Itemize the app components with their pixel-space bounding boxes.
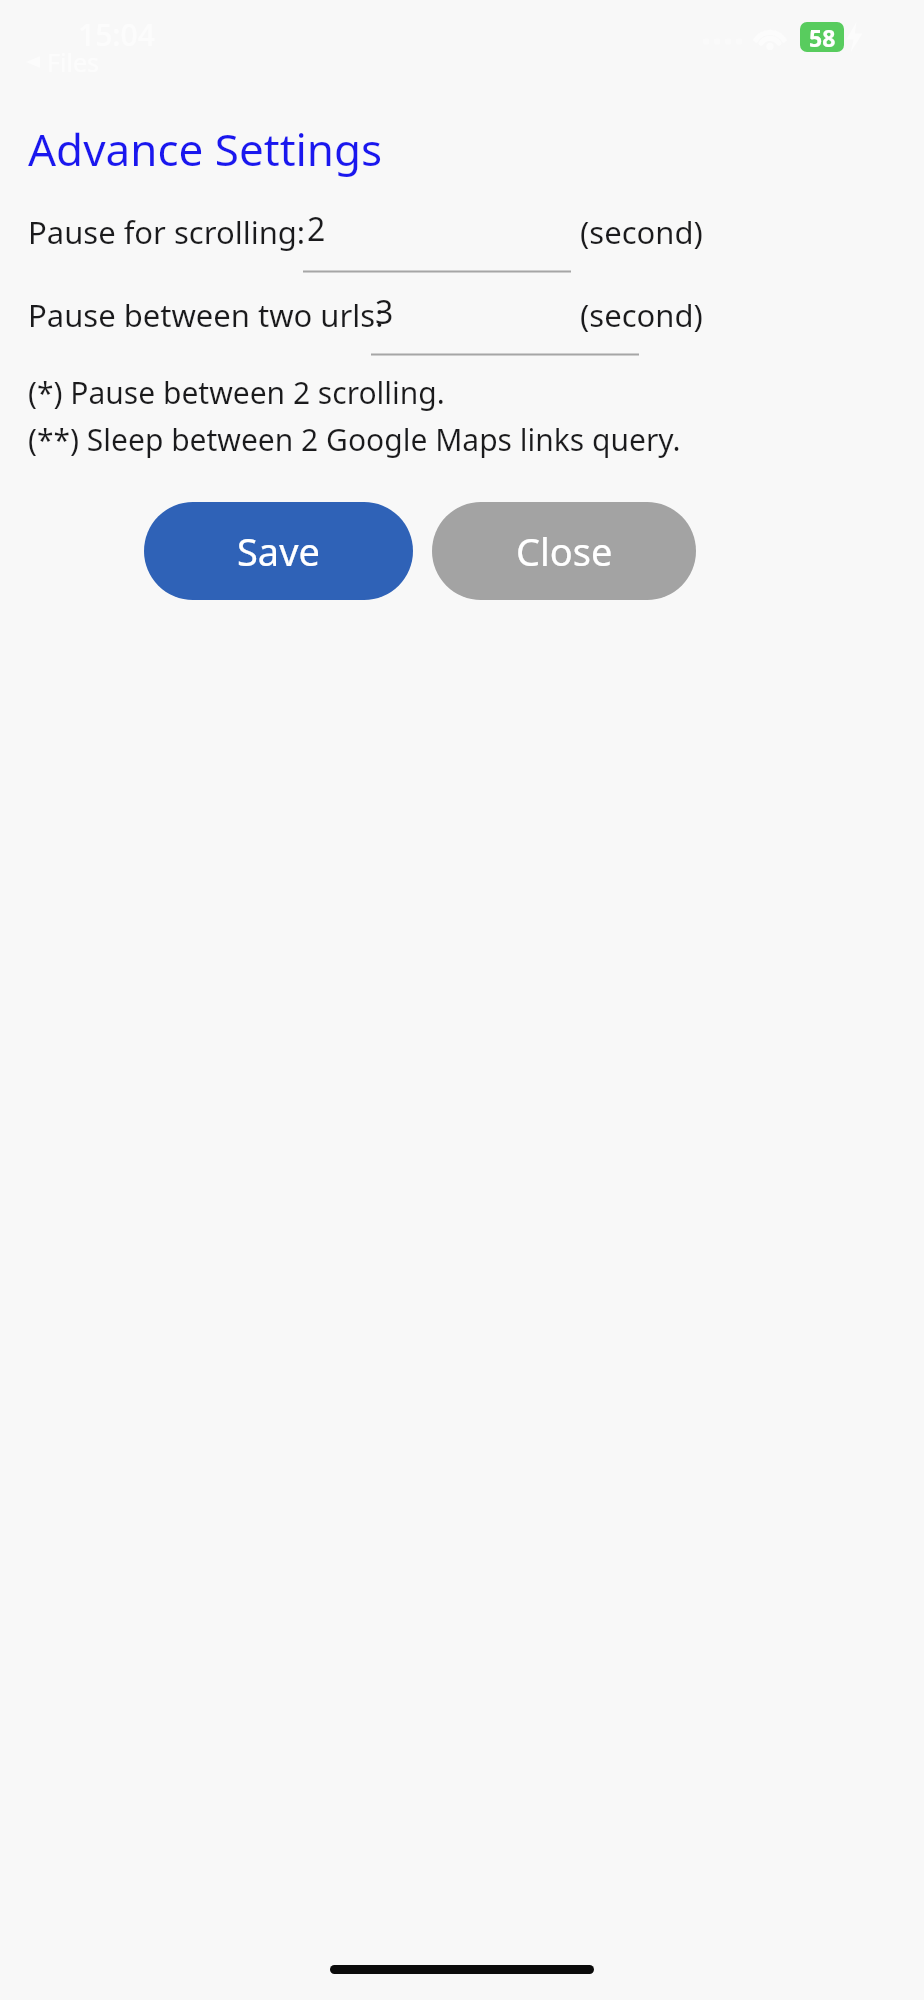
button[interactable]: Pause for scrolling: input [303, 203, 571, 273]
staticText: 3 [375, 290, 394, 334]
staticText: Pause between two urls: [28, 294, 384, 336]
staticText: 58 [809, 22, 836, 52]
button[interactable]: Pause between two urls: input [371, 286, 639, 356]
staticText: (*) Pause between 2 scrolling. [28, 372, 445, 413]
button[interactable]: Close [432, 502, 696, 600]
staticText: Advance Settings [28, 119, 383, 179]
staticText: Pause for scrolling: [28, 211, 306, 253]
staticText: 2 [307, 207, 326, 251]
staticText: Save [237, 525, 320, 577]
staticText: (second) [580, 211, 703, 253]
staticText: (second) [580, 294, 703, 336]
staticText: Close [516, 525, 613, 577]
button[interactable]: Save [144, 502, 413, 600]
staticText: (**) Sleep between 2 Google Maps links q… [28, 419, 681, 460]
